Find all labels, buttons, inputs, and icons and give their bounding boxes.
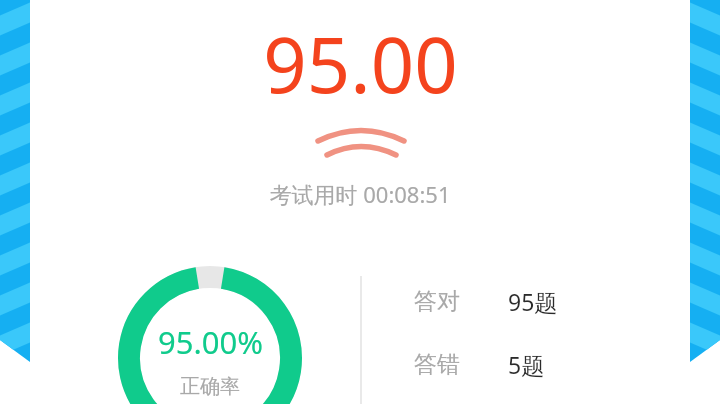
staticText: 95题 [508, 286, 558, 317]
staticText: 5题 [508, 349, 545, 380]
staticText: 正确率 [180, 374, 240, 399]
staticText: 考试用时 00:08:51 [269, 179, 451, 209]
staticText: 答错 [414, 350, 460, 379]
staticText: 95.00% [158, 321, 263, 363]
staticText: 95.00 [263, 12, 458, 116]
button[interactable]: 95.00% [120, 320, 300, 364]
button[interactable]: 答对 [380, 282, 630, 320]
staticText: 答对 [414, 287, 460, 316]
button[interactable]: 答错 [380, 345, 630, 383]
